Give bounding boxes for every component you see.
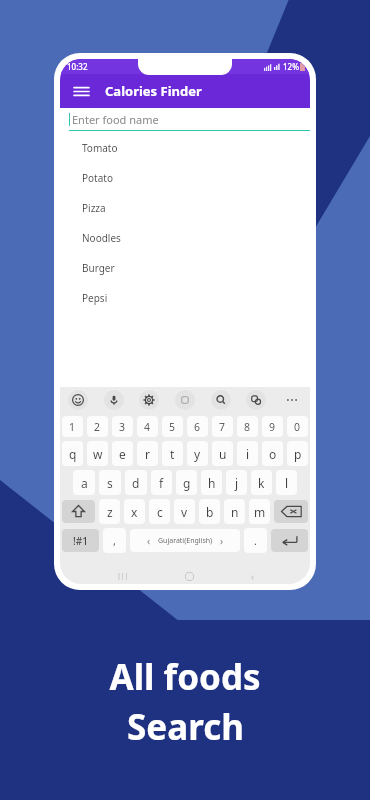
button[interactable]: !#1 xyxy=(62,529,99,552)
staticText: ||| xyxy=(117,571,129,581)
button[interactable]: y xyxy=(187,441,208,466)
staticText: Burger xyxy=(82,261,115,275)
staticText: u xyxy=(219,446,227,462)
button[interactable]: 7 xyxy=(212,416,233,437)
button[interactable]: Stickers xyxy=(175,390,195,410)
staticText: 0 xyxy=(294,420,301,434)
button[interactable]: Noodles xyxy=(71,223,307,253)
button[interactable]: i xyxy=(237,441,258,466)
button[interactable]: Search xyxy=(211,390,231,410)
button[interactable]: ‹ xyxy=(130,529,240,552)
button[interactable]: v xyxy=(174,499,195,524)
staticText: › xyxy=(220,534,224,548)
staticText: y xyxy=(194,446,201,462)
button[interactable]: 0 xyxy=(287,416,308,437)
button[interactable]: a xyxy=(73,470,95,495)
button[interactable]: Translate xyxy=(246,390,266,410)
button[interactable]: z xyxy=(99,499,120,524)
button[interactable]: Tomato xyxy=(71,133,307,163)
button[interactable]: 9 xyxy=(262,416,283,437)
button[interactable]: o xyxy=(262,441,283,466)
staticText: m xyxy=(254,504,266,520)
button[interactable]: 5 xyxy=(162,416,183,437)
staticText: Pizza xyxy=(82,201,106,215)
button[interactable]: k xyxy=(251,470,272,495)
button[interactable]: Backspace xyxy=(274,500,308,523)
staticText: 8 xyxy=(244,420,251,434)
staticText: 5 xyxy=(169,420,176,434)
button[interactable]: c xyxy=(149,499,170,524)
staticText: Potato xyxy=(82,171,113,185)
staticText: e xyxy=(119,446,126,462)
button[interactable]: Emoji xyxy=(68,390,88,410)
button[interactable]: p xyxy=(287,441,308,466)
staticText: f xyxy=(159,475,164,491)
button[interactable]: , xyxy=(103,528,126,553)
staticText: h xyxy=(208,475,216,491)
staticText: Noodles xyxy=(82,231,121,245)
button[interactable]: Enter food name xyxy=(69,112,310,131)
button[interactable]: e xyxy=(112,441,133,466)
button[interactable]: Enter xyxy=(271,529,308,552)
staticText: 6 xyxy=(194,420,201,434)
button[interactable]: h xyxy=(201,470,222,495)
button[interactable]: t xyxy=(162,441,183,466)
button[interactable]: q xyxy=(62,441,83,466)
staticText: l xyxy=(285,475,289,491)
staticText: 2 xyxy=(94,420,101,434)
staticText: Search xyxy=(127,703,244,751)
button[interactable]: w xyxy=(87,441,108,466)
button[interactable]: 8 xyxy=(237,416,258,437)
button[interactable]: j xyxy=(226,470,247,495)
button[interactable]: Settings xyxy=(139,390,159,410)
staticText: Tomato xyxy=(82,141,118,155)
button[interactable]: d xyxy=(125,470,147,495)
staticText: n xyxy=(231,504,239,520)
staticText: q xyxy=(69,446,77,462)
staticText: 4 xyxy=(144,420,151,434)
button[interactable]: m xyxy=(249,499,270,524)
staticText: 3 xyxy=(119,420,126,434)
button[interactable]: Potato xyxy=(71,163,307,193)
staticText: !#1 xyxy=(73,534,88,548)
button[interactable]: 6 xyxy=(187,416,208,437)
button[interactable]: Pizza xyxy=(71,193,307,223)
staticText: b xyxy=(206,504,214,520)
button[interactable]: Shift xyxy=(62,500,95,523)
button[interactable]: g xyxy=(176,470,197,495)
button[interactable]: r xyxy=(137,441,158,466)
button[interactable]: Pepsi xyxy=(71,283,307,313)
button[interactable]: . xyxy=(244,528,267,553)
staticText: v xyxy=(181,504,188,520)
button[interactable]: b xyxy=(199,499,220,524)
button[interactable]: Voice input xyxy=(104,390,124,410)
staticText: ‹ xyxy=(147,534,151,548)
button[interactable]: More options xyxy=(282,390,302,410)
staticText: w xyxy=(93,446,103,462)
staticText: t xyxy=(170,446,175,462)
staticText: s xyxy=(107,475,113,491)
button[interactable]: n xyxy=(224,499,245,524)
button[interactable]: Menu xyxy=(69,79,93,103)
staticText: r xyxy=(145,446,150,462)
button[interactable]: u xyxy=(212,441,233,466)
button[interactable]: s xyxy=(99,470,121,495)
staticText: Gujarati(English) xyxy=(158,536,213,546)
staticText: z xyxy=(107,504,113,520)
button[interactable]: Burger xyxy=(71,253,307,283)
staticText: Enter food name xyxy=(72,112,159,127)
staticText: o xyxy=(269,446,277,462)
staticText: j xyxy=(235,475,239,491)
button[interactable]: x xyxy=(124,499,145,524)
staticText: g xyxy=(183,475,191,491)
staticText: Pepsi xyxy=(82,291,108,305)
staticText: 1 xyxy=(69,420,76,434)
button[interactable]: 3 xyxy=(112,416,133,437)
staticText: i xyxy=(246,446,250,462)
button[interactable]: 4 xyxy=(137,416,158,437)
button[interactable]: 2 xyxy=(87,416,108,437)
button[interactable]: l xyxy=(276,470,297,495)
button[interactable]: 1 xyxy=(62,416,83,437)
button[interactable]: f xyxy=(151,470,172,495)
staticText: 12% xyxy=(283,61,299,72)
